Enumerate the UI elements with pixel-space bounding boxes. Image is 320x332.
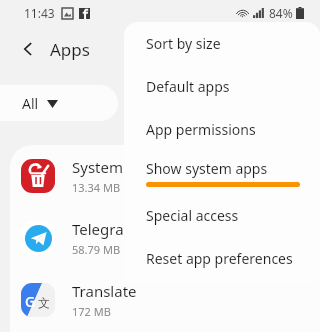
- staticText: 11:43: [24, 5, 55, 21]
- button[interactable]: Telegram: [10, 207, 320, 269]
- staticText: 58.79 MB: [72, 242, 121, 257]
- staticText: All: [22, 94, 39, 113]
- staticText: Special access: [146, 206, 239, 225]
- button[interactable]: Show system apps: [124, 151, 320, 194]
- button[interactable]: System: [10, 145, 320, 207]
- staticText: Default apps: [146, 77, 230, 96]
- staticText: App permissions: [146, 120, 256, 139]
- staticText: 172 MB: [72, 304, 111, 319]
- button[interactable]: Special access: [124, 194, 320, 237]
- button[interactable]: G: [10, 269, 320, 331]
- staticText: 文: [38, 295, 50, 310]
- button[interactable]: Reset app preferences: [124, 237, 320, 280]
- staticText: 13.34 MB: [72, 180, 121, 195]
- staticText: Apps: [50, 38, 90, 61]
- staticText: Telegram: [72, 219, 138, 239]
- staticText: G: [25, 292, 36, 311]
- staticText: System: [72, 157, 123, 177]
- button[interactable]: Back: [12, 33, 44, 65]
- staticText: Sort by size: [146, 34, 221, 53]
- staticText: Show system apps: [146, 159, 268, 178]
- staticText: Reset app preferences: [146, 249, 293, 268]
- staticText: Translate: [72, 281, 137, 301]
- button[interactable]: Default apps: [124, 65, 320, 108]
- button[interactable]: App permissions: [124, 108, 320, 151]
- button[interactable]: Sort by size: [124, 22, 320, 65]
- staticText: 84%: [269, 5, 293, 21]
- button[interactable]: All: [0, 85, 118, 121]
